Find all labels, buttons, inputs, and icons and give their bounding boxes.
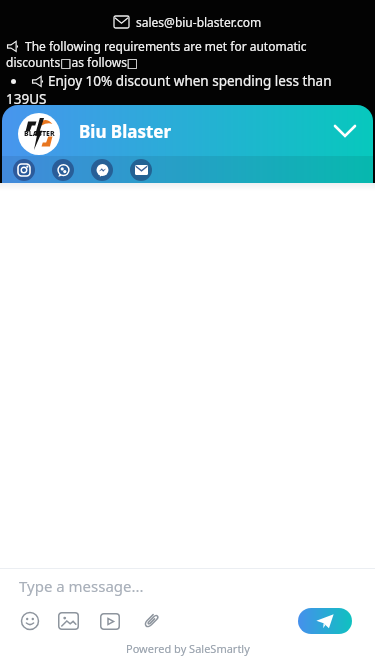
button[interactable]: [91, 159, 113, 181]
staticText: Powered by SaleSmartly: [126, 641, 250, 656]
staticText: Enjoy 10% discount when spending less th…: [48, 72, 332, 90]
staticText: sales@biu-blaster.com: [136, 14, 262, 30]
button[interactable]: [13, 159, 35, 181]
button[interactable]: [52, 159, 74, 181]
button[interactable]: [335, 126, 355, 136]
button[interactable]: [100, 613, 120, 630]
button[interactable]: [20, 611, 40, 631]
staticText: discounts□as follows□: [6, 54, 139, 70]
button[interactable]: [298, 608, 352, 634]
staticText: Type a message...: [19, 576, 144, 596]
staticText: Biu Blaster: [79, 120, 172, 143]
staticText: BLASTER: [24, 129, 55, 139]
button[interactable]: [130, 159, 152, 181]
staticText: 139US: [6, 90, 47, 108]
button[interactable]: [141, 611, 161, 631]
staticText: The following requirements are met for a…: [25, 38, 307, 54]
button[interactable]: [58, 612, 79, 630]
button[interactable]: Type a message...: [0, 569, 375, 603]
